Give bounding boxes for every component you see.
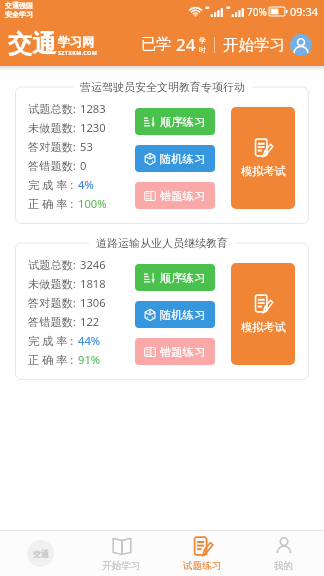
staticText: 随机练习 [160,152,206,166]
staticText: 70% [247,5,267,19]
staticText: 时 [199,45,206,54]
button[interactable]: 开始学习 [223,35,285,55]
staticText: 交通强国 [5,1,33,10]
staticText: 顺序练习 [160,115,206,129]
button[interactable]: 已学 [141,33,206,56]
staticText: 错题练习 [160,345,206,359]
staticText: SZTXKM.COM [58,49,98,56]
staticText: 正 确 率 : [28,352,74,367]
staticText: 0 [80,158,87,173]
button[interactable]: 我的 [243,531,324,576]
staticText: 答对题数: [28,139,76,154]
staticText: 未做题数: [28,276,76,291]
staticText: 学 [199,36,206,45]
staticText: 已学 [141,35,171,54]
staticText: 答错题数: [28,314,76,329]
button[interactable]: 随机练习 [135,145,215,172]
staticText: 完 成 率 : [28,333,74,348]
staticText: 交通 [8,29,56,59]
staticText: 模拟考试 [241,320,286,334]
staticText: 3246 [80,257,106,272]
button[interactable]: 顺序练习 [135,108,215,135]
staticText: 顺序练习 [160,271,206,285]
staticText: 我的 [274,560,294,572]
staticText: 正 确 率 : [28,196,74,211]
staticText: 随机练习 [160,308,206,322]
staticText: 答对题数: [28,295,76,310]
staticText: 试题练习 [183,560,222,572]
button[interactable]: 顺序练习 [135,264,215,291]
button[interactable]: 模拟考试 [231,263,295,365]
staticText: 学习网 [58,34,94,49]
staticText: 1306 [80,295,106,310]
button[interactable]: Profile [290,34,312,56]
button[interactable]: 错题练习 [135,338,215,365]
button[interactable]: 模拟考试 [231,107,295,209]
staticText: 09:34 [290,4,319,19]
staticText: 营运驾驶员安全文明教育专项行动 [80,80,245,94]
staticText: 交通 [33,549,49,559]
staticText: 24 [176,33,196,56]
button[interactable]: 错题练习 [135,182,215,209]
staticText: 4% [78,177,94,192]
staticText: 错题练习 [160,189,206,203]
staticText: 道路运输从业人员继续教育 [96,236,228,250]
button[interactable]: 随机练习 [135,301,215,328]
staticText: 未做题数: [28,120,76,135]
staticText: 1818 [80,276,106,291]
staticText: 44% [78,333,101,348]
button[interactable]: 开始学习 [81,531,162,576]
staticText: 100% [78,196,107,211]
staticText: 1230 [80,120,106,135]
staticText: 53 [80,139,93,154]
staticText: 91% [78,352,101,367]
staticText: 安全学习 [5,10,33,19]
staticText: 完 成 率 : [28,177,74,192]
staticText: 答错题数: [28,158,76,173]
staticText: 122 [80,314,100,329]
staticText: 试题总数: [28,101,76,116]
staticText: 模拟考试 [241,164,286,178]
button[interactable]: 试题练习 [162,531,243,576]
button[interactable]: 首页 [0,531,81,576]
staticText: 开始学习 [102,560,141,572]
staticText: 1283 [80,101,106,116]
staticText: 试题总数: [28,257,76,272]
